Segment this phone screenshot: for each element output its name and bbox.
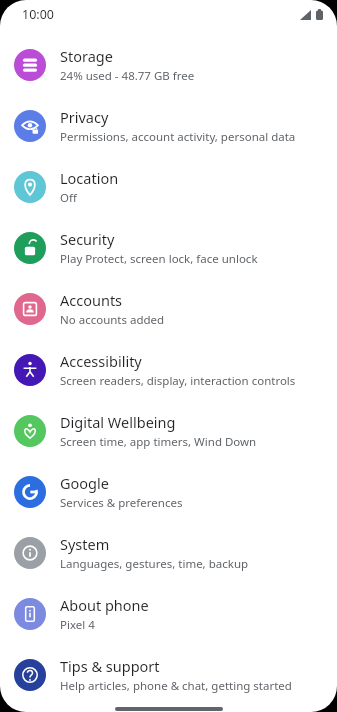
other: Tips & support: [14, 659, 46, 691]
other: Storage: [14, 49, 46, 81]
staticText: Accounts: [60, 290, 123, 310]
staticText: Languages, gestures, time, backup: [60, 556, 249, 572]
staticText: Security: [60, 229, 115, 249]
other: About phone: [14, 598, 46, 630]
button[interactable]: Accessibility: [0, 339, 337, 400]
other: Location: [14, 171, 46, 203]
staticText: Permissions, account activity, personal …: [60, 129, 296, 145]
button[interactable]: Google: [0, 461, 337, 522]
button[interactable]: Storage: [0, 34, 337, 95]
other: Digital Wellbeing: [14, 415, 46, 447]
staticText: Privacy: [60, 107, 109, 127]
staticText: About phone: [60, 595, 149, 615]
staticText: Help articles, phone & chat, getting sta…: [60, 678, 292, 694]
button[interactable]: Accounts: [0, 278, 337, 339]
other: Google: [14, 476, 46, 508]
staticText: Off: [60, 190, 77, 206]
button[interactable]: Tips & support: [0, 644, 337, 705]
other: Privacy: [14, 110, 46, 142]
other: Security: [14, 232, 46, 264]
button[interactable]: System: [0, 522, 337, 583]
staticText: 10:00: [22, 6, 54, 23]
button[interactable]: Digital Wellbeing: [0, 400, 337, 461]
other: System: [14, 537, 46, 569]
other: Accessibility: [14, 354, 46, 386]
button[interactable]: Location: [0, 156, 337, 217]
staticText: Storage: [60, 46, 113, 66]
staticText: Play Protect, screen lock, face unlock: [60, 251, 258, 267]
staticText: System: [60, 534, 110, 554]
button[interactable]: Security: [0, 217, 337, 278]
staticText: Accessibility: [60, 351, 142, 371]
staticText: Tips & support: [60, 656, 160, 676]
staticText: Pixel 4: [60, 617, 95, 633]
staticText: Digital Wellbeing: [60, 412, 176, 432]
staticText: Location: [60, 168, 119, 188]
other: Accounts: [14, 293, 46, 325]
staticText: Google: [60, 473, 109, 493]
button[interactable]: Privacy: [0, 95, 337, 156]
staticText: Services & preferences: [60, 495, 183, 511]
staticText: Screen readers, display, interaction con…: [60, 373, 296, 389]
staticText: 24% used - 48.77 GB free: [60, 68, 195, 84]
button[interactable]: About phone: [0, 583, 337, 644]
staticText: Screen time, app timers, Wind Down: [60, 434, 257, 450]
staticText: No accounts added: [60, 312, 165, 328]
